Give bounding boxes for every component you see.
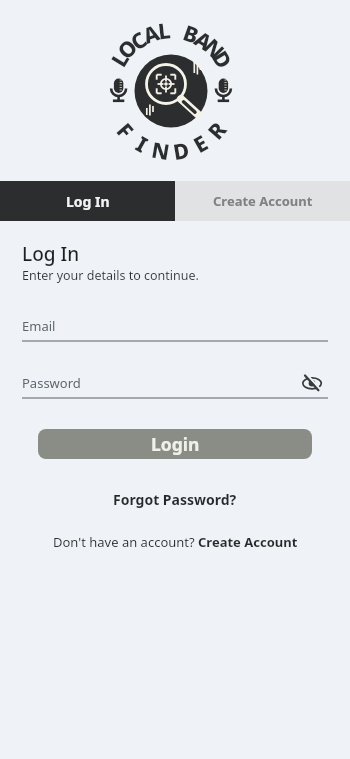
button[interactable] bbox=[302, 373, 322, 393]
staticText: N bbox=[150, 135, 172, 166]
staticText: B bbox=[179, 17, 203, 50]
staticText: A bbox=[189, 24, 218, 57]
button[interactable]: Create Account bbox=[175, 181, 350, 221]
staticText: Enter your details to continue. bbox=[22, 267, 199, 284]
staticText: Log In bbox=[66, 192, 110, 211]
staticText: D bbox=[171, 135, 191, 166]
staticText: C bbox=[125, 24, 152, 56]
staticText: E bbox=[188, 128, 213, 159]
staticText: L bbox=[156, 15, 173, 46]
staticText: N bbox=[198, 32, 231, 65]
staticText: A bbox=[139, 17, 164, 50]
staticText: Login bbox=[151, 432, 200, 456]
staticText: D bbox=[206, 45, 239, 74]
staticText: Log In bbox=[22, 241, 80, 267]
staticText: I bbox=[131, 129, 153, 158]
button[interactable]: Don't have an account? Create Account bbox=[53, 533, 298, 551]
staticText: Password bbox=[22, 374, 81, 392]
staticText: Create Account bbox=[213, 192, 313, 210]
staticText: L bbox=[104, 46, 135, 72]
button[interactable]: Login bbox=[38, 429, 312, 459]
staticText: O bbox=[111, 32, 144, 65]
staticText: F bbox=[111, 116, 140, 144]
staticText: Email bbox=[22, 317, 56, 335]
staticText: R bbox=[201, 115, 232, 145]
button[interactable]: Log In bbox=[0, 181, 175, 221]
button[interactable]: Forgot Password? bbox=[113, 490, 237, 509]
